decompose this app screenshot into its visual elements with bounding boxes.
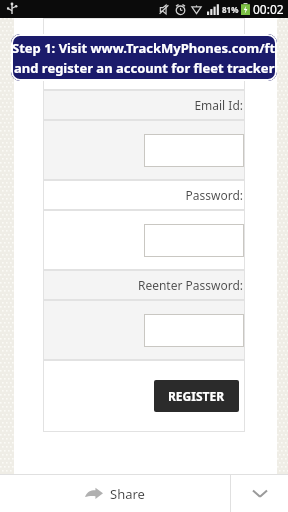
staticText: REGISTER <box>168 388 225 404</box>
staticText: 00:02 <box>253 1 284 17</box>
button[interactable]: Collapse <box>231 475 288 512</box>
button[interactable] <box>144 134 244 167</box>
button[interactable] <box>144 314 244 347</box>
button[interactable] <box>144 38 244 71</box>
staticText: Email Id: <box>43 97 243 113</box>
staticText: Share <box>110 485 145 503</box>
staticText: Reenter Password: <box>43 277 243 293</box>
staticText: 81% <box>222 4 239 15</box>
button[interactable] <box>144 224 244 257</box>
button[interactable]: Share <box>0 475 230 512</box>
staticText: and register an account for fleet tracke… <box>14 59 275 77</box>
button[interactable]: REGISTER <box>154 380 239 412</box>
staticText: Step 1: Visit www.TrackMyPhones.com/ft <box>12 39 276 57</box>
button[interactable]: Step 1: Visit www.TrackMyPhones.com/ft <box>11 34 277 81</box>
staticText: Password: <box>43 187 243 203</box>
